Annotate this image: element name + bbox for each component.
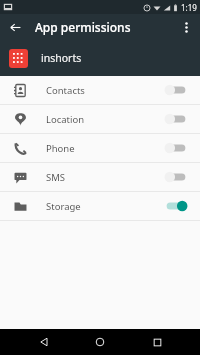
button[interactable]: Storage xyxy=(0,192,200,220)
staticText: Phone xyxy=(46,142,164,155)
button[interactable]: Off xyxy=(164,82,188,98)
staticText: Contacts xyxy=(46,84,164,97)
staticText: Storage xyxy=(46,200,164,213)
button[interactable]: Home xyxy=(87,329,113,355)
staticText: SMS xyxy=(46,171,164,184)
button[interactable]: Contacts xyxy=(0,76,200,104)
staticText: App permissions xyxy=(35,19,131,35)
staticText: Location xyxy=(46,113,164,126)
button[interactable]: SMS xyxy=(0,163,200,191)
button[interactable]: Off xyxy=(164,169,188,185)
button[interactable]: Back xyxy=(31,329,57,355)
button[interactable]: Off xyxy=(164,140,188,156)
staticText: inshorts xyxy=(41,51,82,65)
button[interactable]: Phone xyxy=(0,134,200,162)
button[interactable]: Back xyxy=(4,16,26,38)
button[interactable]: Recent apps xyxy=(144,329,170,355)
staticText: 1:19 xyxy=(181,2,197,13)
button[interactable]: Location xyxy=(0,105,200,133)
button[interactable]: On xyxy=(164,198,188,214)
button[interactable]: More options xyxy=(175,16,197,38)
button[interactable]: Off xyxy=(164,111,188,127)
